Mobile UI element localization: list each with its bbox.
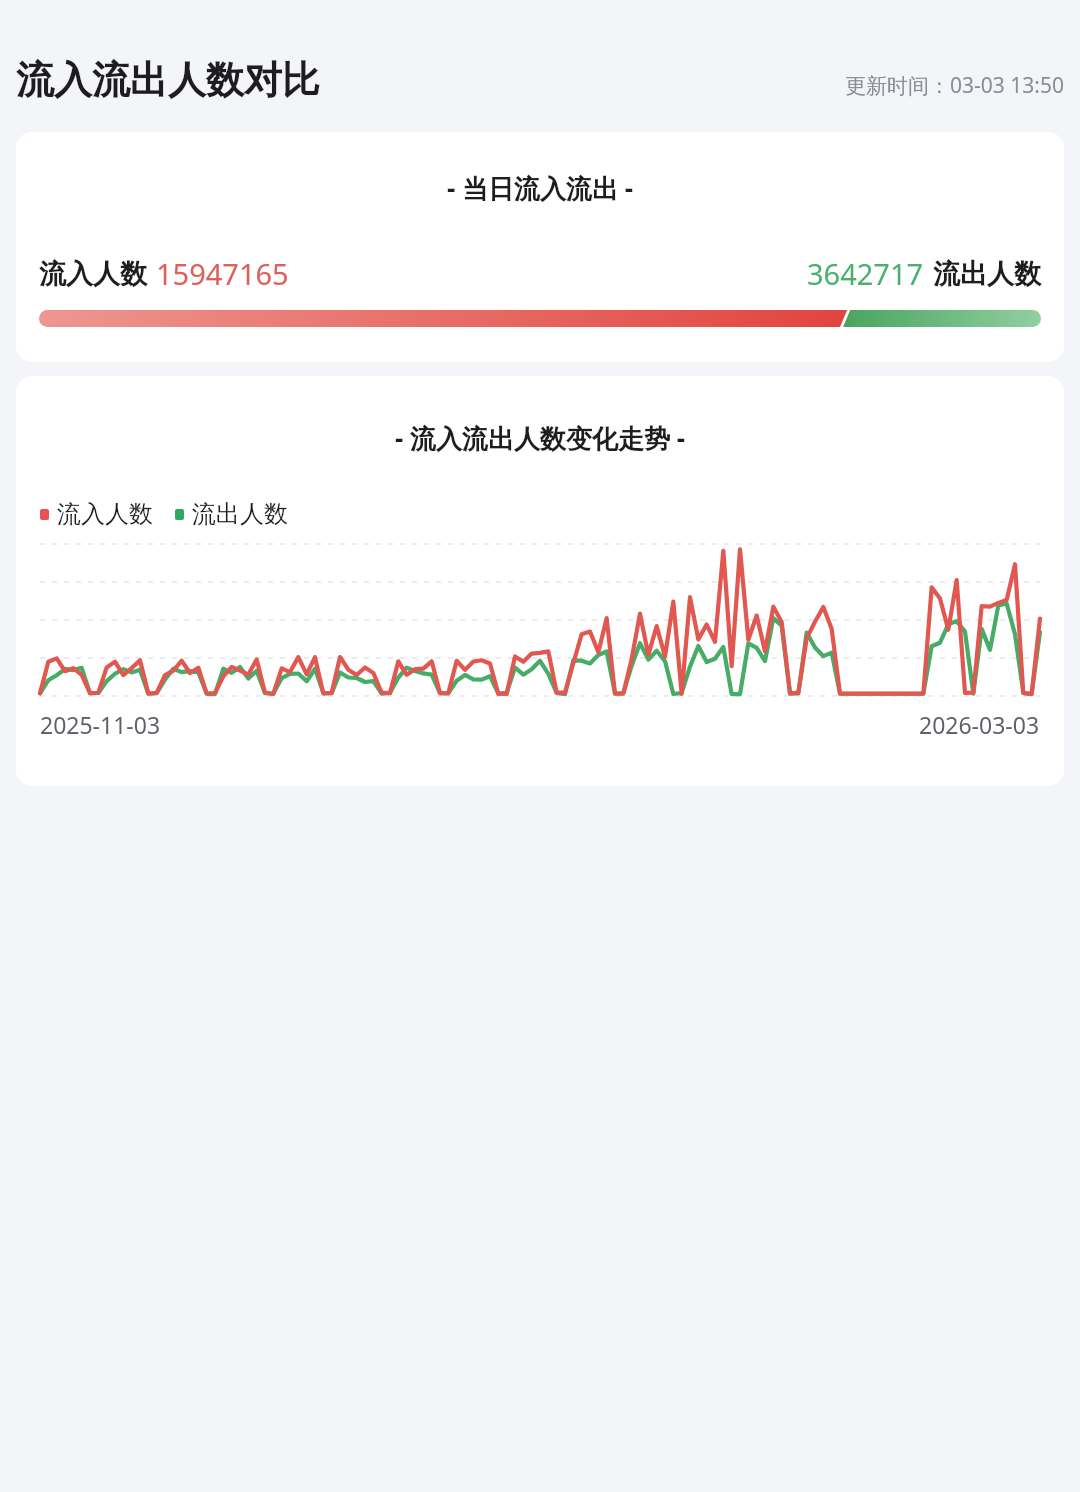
staticText: - 流入流出人数变化走势 - bbox=[16, 420, 1064, 456]
button[interactable]: - 当日流入流出 - bbox=[16, 132, 1064, 362]
button[interactable]: - 流入流出人数变化走势 - bbox=[16, 376, 1064, 786]
staticText: 更新时间：03-03 13:50 bbox=[845, 71, 1064, 100]
staticText: 流入人数 bbox=[39, 257, 147, 291]
staticText: 流出人数 bbox=[933, 257, 1041, 291]
staticText: 3642717 bbox=[807, 254, 924, 293]
staticText: 流入人数 bbox=[57, 499, 153, 529]
staticText: 15947165 bbox=[156, 254, 289, 293]
staticText: 2025-11-03 bbox=[40, 709, 161, 740]
staticText: 流入流出人数对比 bbox=[16, 56, 320, 104]
staticText: 流出人数 bbox=[192, 499, 288, 529]
staticText: - 当日流入流出 - bbox=[16, 170, 1064, 206]
staticText: 2026-03-03 bbox=[919, 709, 1040, 740]
